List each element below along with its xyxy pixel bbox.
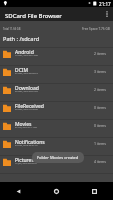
staticText: SDCard File Browser — [5, 12, 62, 20]
button[interactable]: Recent apps — [75, 182, 113, 200]
staticText: 10 May, 2016 05:13:06 — [15, 54, 38, 57]
button[interactable]: Download — [0, 84, 113, 101]
staticText: Android — [15, 49, 34, 56]
button[interactable]: Pictures — [0, 156, 113, 173]
staticText: Free Space 7.76 GB — [82, 27, 110, 31]
button[interactable]: Android — [0, 48, 113, 65]
button[interactable]: Back — [0, 182, 37, 200]
staticText: 0 items — [94, 105, 107, 110]
button[interactable]: DCIM — [0, 66, 113, 83]
staticText: 1 items — [94, 141, 107, 146]
staticText: Total 11.66 GB — [3, 27, 21, 31]
staticText: FileReceived — [15, 103, 44, 110]
staticText: Path : /sdcard — [3, 35, 40, 43]
staticText: Folder Movies created — [37, 155, 79, 160]
staticText: 2 items — [94, 87, 107, 92]
staticText: 2 items — [94, 51, 107, 56]
staticText: 4 items — [94, 159, 107, 164]
button[interactable]: Home — [37, 182, 75, 200]
staticText: 21:17 — [99, 1, 111, 7]
button[interactable]: Notifications — [0, 138, 113, 155]
staticText: 27 May, 2016 05:50:19 — [15, 72, 38, 75]
staticText: 07 Apr, 2016 01:11:09 — [15, 126, 37, 129]
staticText: 3 items — [94, 69, 107, 74]
staticText: DCIM — [15, 67, 29, 74]
button[interactable]: FileReceived — [0, 102, 113, 119]
staticText: Movies — [15, 121, 32, 128]
staticText: 0 items — [94, 123, 107, 128]
staticText: Download — [15, 85, 39, 92]
button[interactable]: Movies — [0, 120, 113, 137]
staticText: 30 May, 2016 12:30:08 — [15, 108, 38, 111]
staticText: 04 Nov, 2016 04:21:12 — [15, 144, 38, 147]
staticText: 12 Jun, 2016 09:02:41 — [15, 162, 37, 165]
staticText: Pictures — [15, 157, 34, 164]
staticText: 29 May, 2016 03:51:04 — [15, 90, 38, 93]
staticText: Notifications — [15, 139, 45, 146]
button[interactable]: More options — [101, 7, 113, 21]
